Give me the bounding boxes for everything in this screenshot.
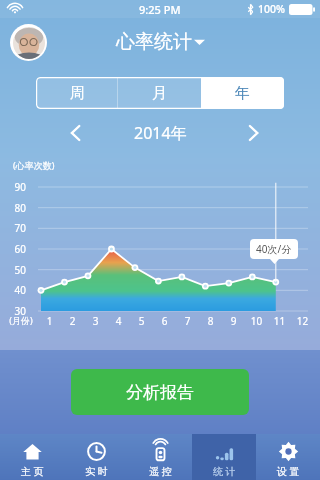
- staticText: 40次/分: [256, 242, 292, 256]
- staticText: 10: [245, 314, 268, 328]
- button[interactable]: 月: [118, 77, 201, 109]
- staticText: 90: [14, 180, 26, 194]
- button[interactable]: Statistics: [192, 434, 256, 480]
- staticText: 5: [130, 314, 153, 328]
- staticText: 2014年: [134, 122, 187, 144]
- staticText: 3: [84, 314, 107, 328]
- staticText: 4: [107, 314, 130, 328]
- button[interactable]: Settings: [256, 434, 320, 480]
- button[interactable]: Profile: [10, 24, 47, 61]
- staticText: 6: [153, 314, 176, 328]
- staticText: 统 计: [213, 464, 236, 478]
- button[interactable]: 年: [201, 77, 284, 109]
- staticText: (心率次数): [13, 159, 55, 171]
- staticText: 周: [70, 84, 85, 103]
- staticText: 7: [176, 314, 199, 328]
- staticText: 12: [291, 314, 314, 328]
- button[interactable]: 分析报告: [71, 369, 249, 415]
- button[interactable]: Home: [0, 434, 64, 480]
- button[interactable]: Remote: [128, 434, 192, 480]
- staticText: 设 置: [277, 464, 300, 478]
- button[interactable]: 周: [36, 77, 118, 109]
- staticText: 1: [38, 314, 61, 328]
- staticText: 8: [199, 314, 222, 328]
- staticText: 60: [14, 242, 26, 256]
- staticText: 遥 控: [149, 464, 172, 478]
- staticText: 30: [14, 304, 26, 318]
- staticText: 50: [14, 263, 26, 277]
- staticText: 9: [222, 314, 245, 328]
- staticText: 主 页: [21, 464, 44, 478]
- staticText: 70: [14, 221, 26, 235]
- staticText: 月: [152, 84, 167, 103]
- staticText: 2: [61, 314, 84, 328]
- button[interactable]: Next year: [240, 120, 266, 146]
- staticText: 11: [268, 314, 291, 328]
- staticText: 40: [14, 283, 26, 297]
- staticText: 分析报告: [126, 382, 194, 403]
- button[interactable]: Realtime: [64, 434, 128, 480]
- staticText: 年: [235, 84, 250, 103]
- staticText: 实 时: [85, 464, 108, 478]
- staticText: 9:25 PM: [139, 2, 181, 17]
- staticText: (月份): [4, 314, 38, 326]
- button[interactable]: Previous year: [62, 120, 88, 146]
- staticText: 80: [14, 201, 26, 215]
- staticText: 心率统计: [116, 30, 192, 54]
- staticText: 100%: [258, 2, 285, 16]
